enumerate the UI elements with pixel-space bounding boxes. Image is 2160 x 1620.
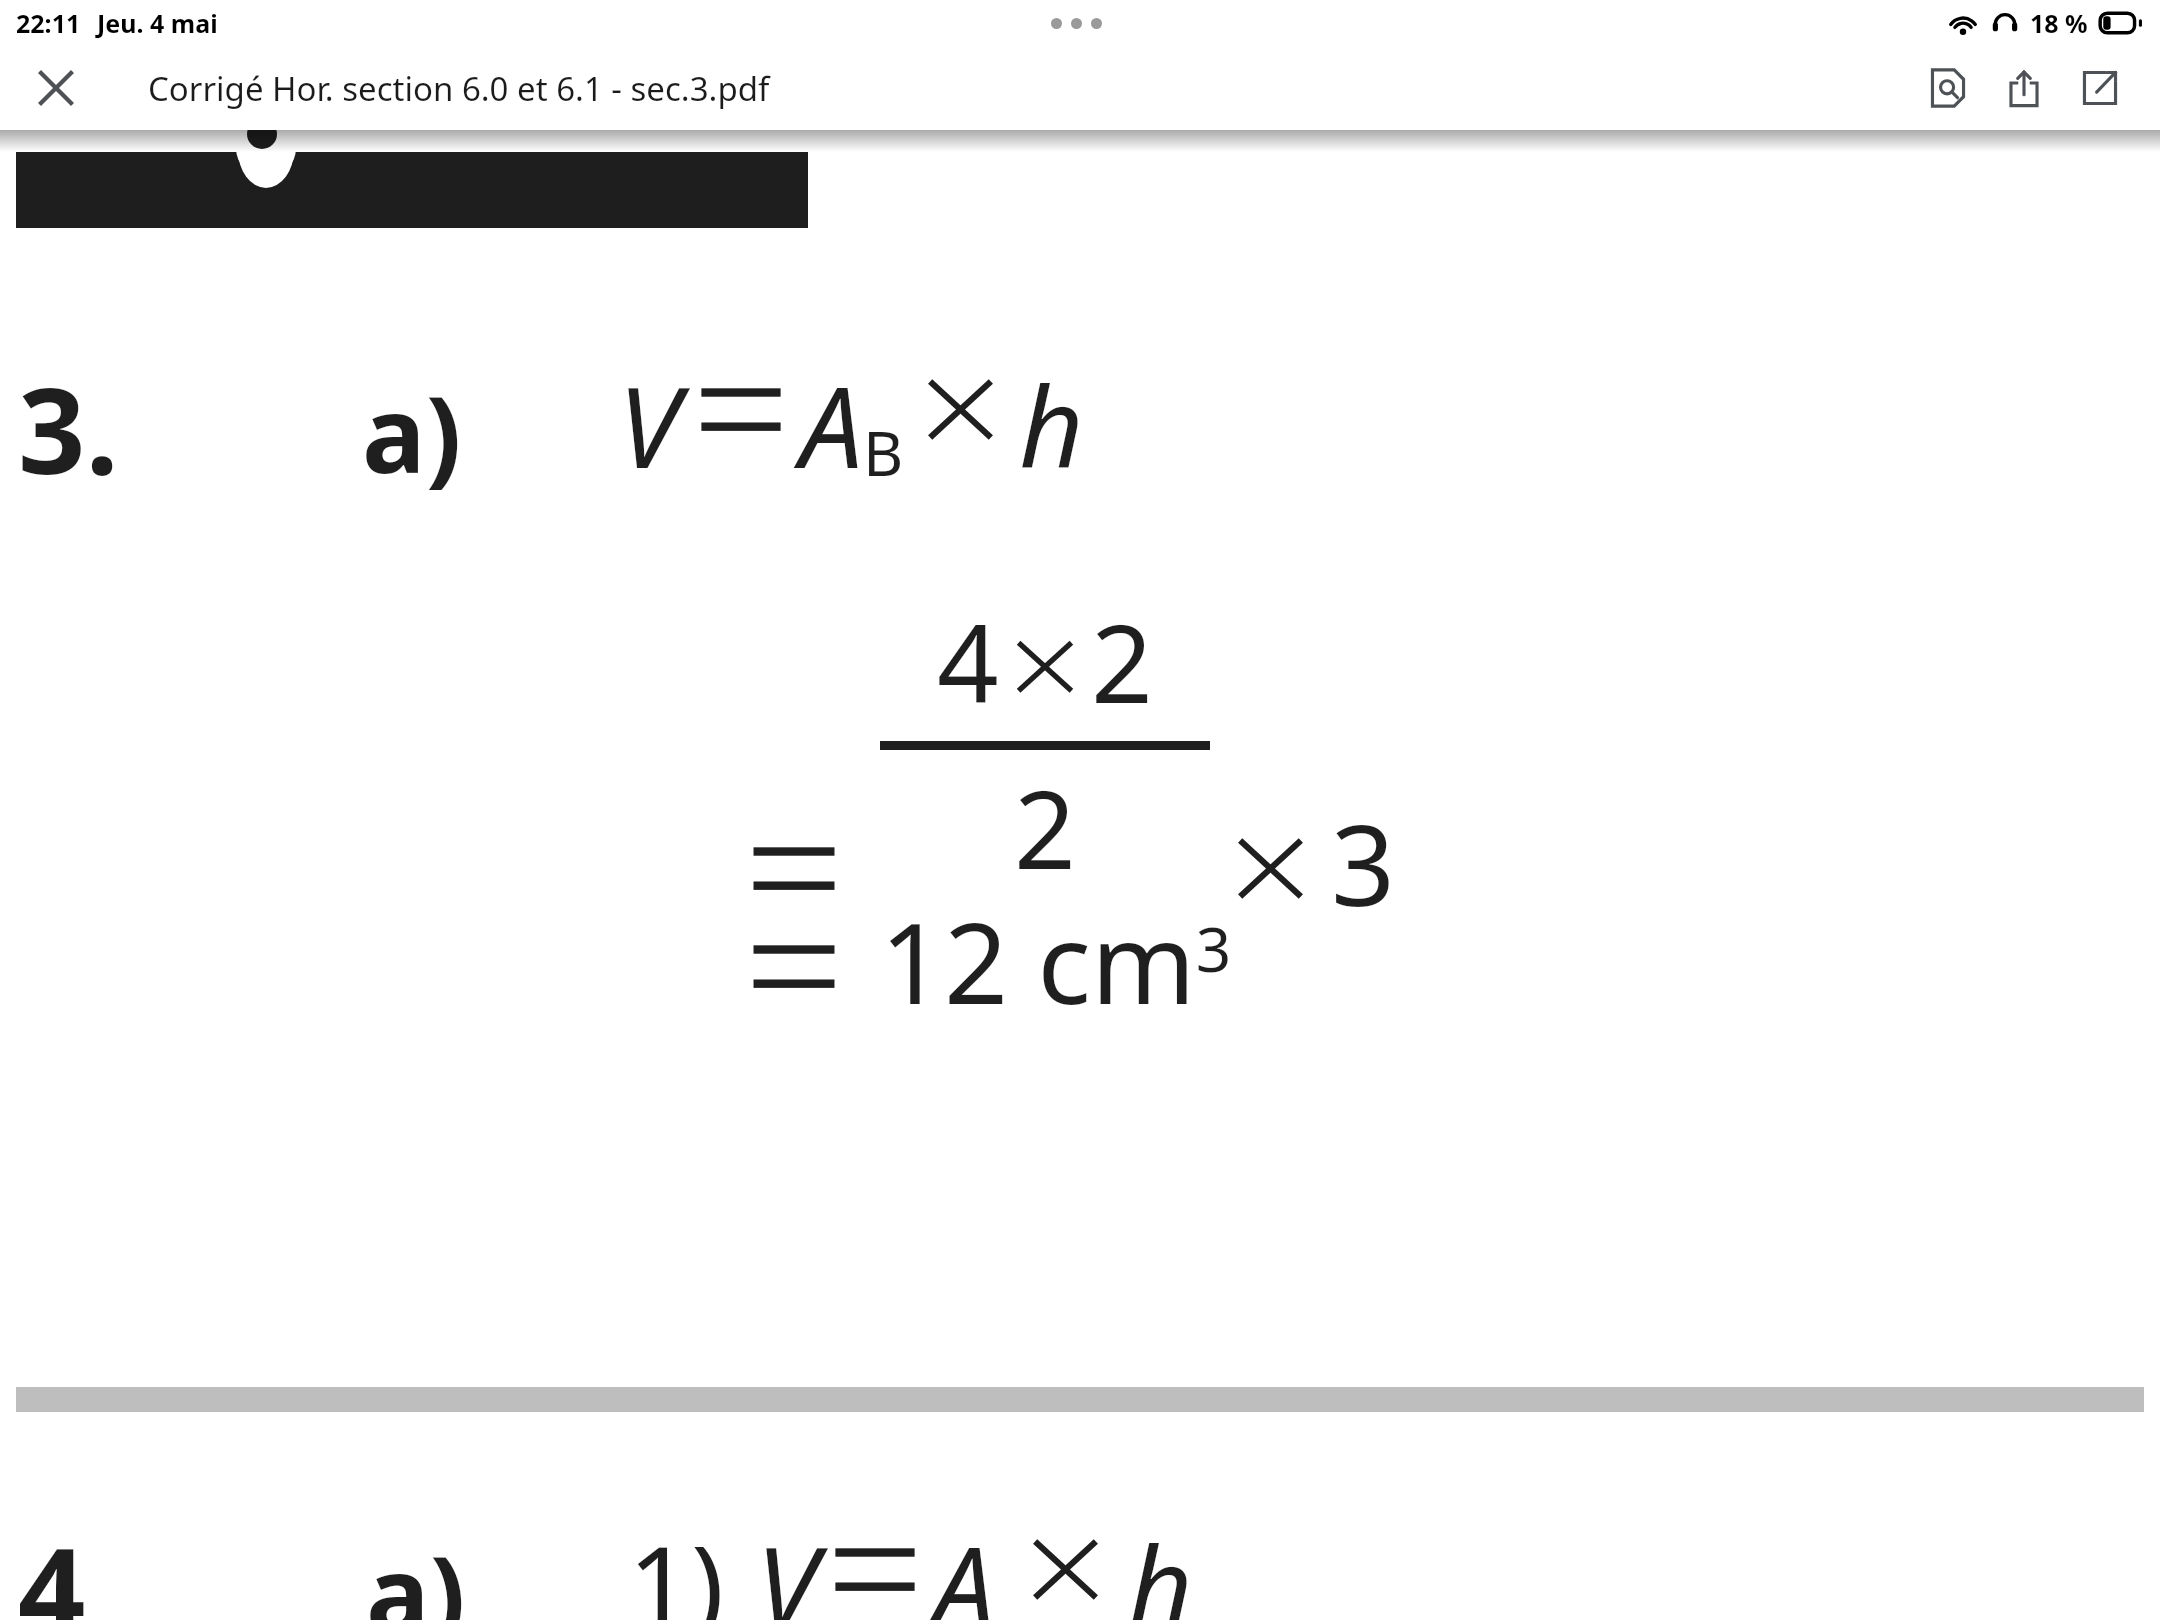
staticText: h bbox=[1019, 348, 1084, 501]
staticText: A bbox=[932, 1508, 995, 1620]
staticText: V bbox=[618, 348, 680, 501]
staticText: a) bbox=[366, 1520, 466, 1620]
staticText: 12 cm3 bbox=[880, 884, 1232, 1037]
staticText: 2 bbox=[1091, 588, 1153, 735]
staticText: A bbox=[800, 348, 863, 501]
staticText: V bbox=[756, 1508, 818, 1620]
staticText: h bbox=[1128, 1508, 1193, 1620]
staticText: 3. bbox=[18, 348, 119, 509]
staticText: 22:11 bbox=[16, 6, 81, 40]
button[interactable]: Close bbox=[24, 56, 88, 120]
button[interactable]: Find in document bbox=[1910, 50, 1986, 126]
button[interactable]: Open externally bbox=[2062, 50, 2138, 126]
staticText: 18 % bbox=[2030, 6, 2088, 40]
staticText: 4 bbox=[937, 588, 999, 735]
staticText: a) bbox=[362, 360, 462, 504]
staticText: Corrigé Hor. section 6.0 et 6.1 - sec.3.… bbox=[148, 66, 770, 111]
staticText: 3 bbox=[1331, 786, 1396, 939]
staticText: B bbox=[863, 410, 904, 494]
staticText: 1) bbox=[628, 1508, 724, 1620]
staticText: 4 bbox=[18, 1508, 86, 1620]
button[interactable]: Share bbox=[1986, 50, 2062, 126]
staticText: Jeu. 4 mai bbox=[97, 6, 218, 40]
staticText: 2 bbox=[1014, 754, 1076, 901]
